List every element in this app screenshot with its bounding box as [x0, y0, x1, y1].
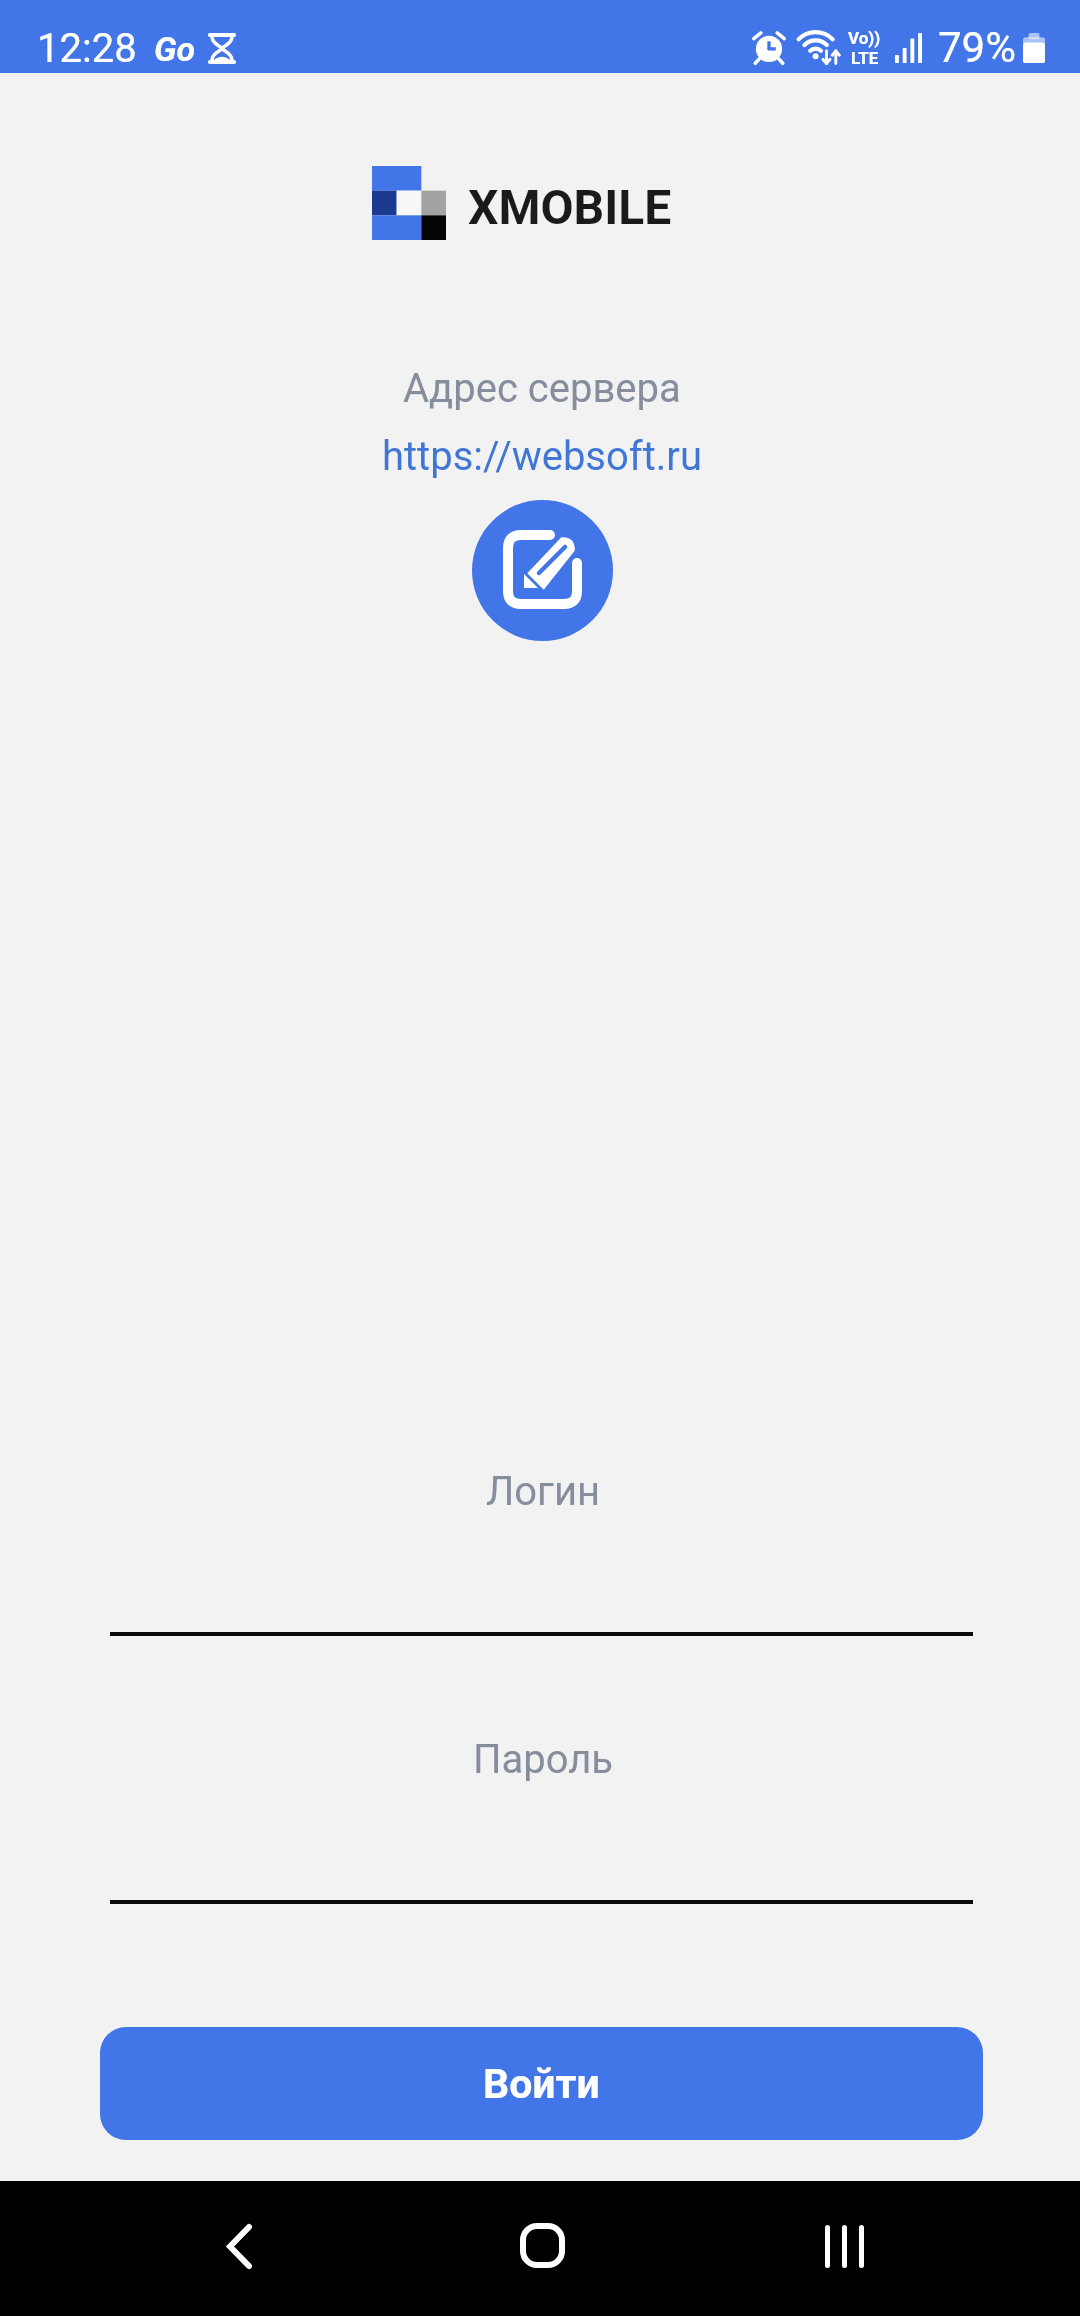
button[interactable]: Edit server address: [472, 500, 613, 641]
button[interactable]: Home: [482, 2185, 602, 2305]
button[interactable]: Back: [179, 2186, 299, 2306]
button[interactable]: https://websoft.ru: [382, 433, 702, 480]
button[interactable]: Войти: [100, 2027, 983, 2140]
button[interactable]: Recent apps: [784, 2186, 904, 2306]
staticText: 12:28: [37, 25, 137, 72]
staticText: LTE: [851, 48, 879, 68]
staticText: XMOBILE: [468, 179, 672, 235]
staticText: Vo)): [848, 28, 881, 48]
staticText: Войти: [483, 2060, 600, 2108]
staticText: Пароль: [3, 1736, 1080, 1783]
staticText: Логин: [3, 1468, 1080, 1515]
staticText: Go: [154, 29, 196, 69]
staticText: 79%: [938, 23, 1016, 72]
staticText: Адрес сервера: [403, 365, 681, 412]
